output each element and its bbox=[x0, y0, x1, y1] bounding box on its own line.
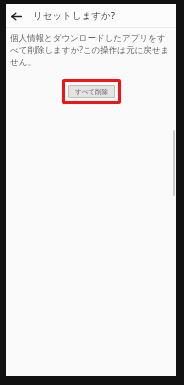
button[interactable]: Back bbox=[6, 6, 26, 26]
button[interactable]: すべて削除 bbox=[68, 85, 115, 98]
staticText: 個人情報とダウンロードしたアプリをすべて削除しますか?この操作は元に戻せません。 bbox=[10, 33, 173, 67]
staticText: リセットしますか? bbox=[33, 9, 116, 22]
staticText: すべて削除 bbox=[75, 88, 108, 96]
